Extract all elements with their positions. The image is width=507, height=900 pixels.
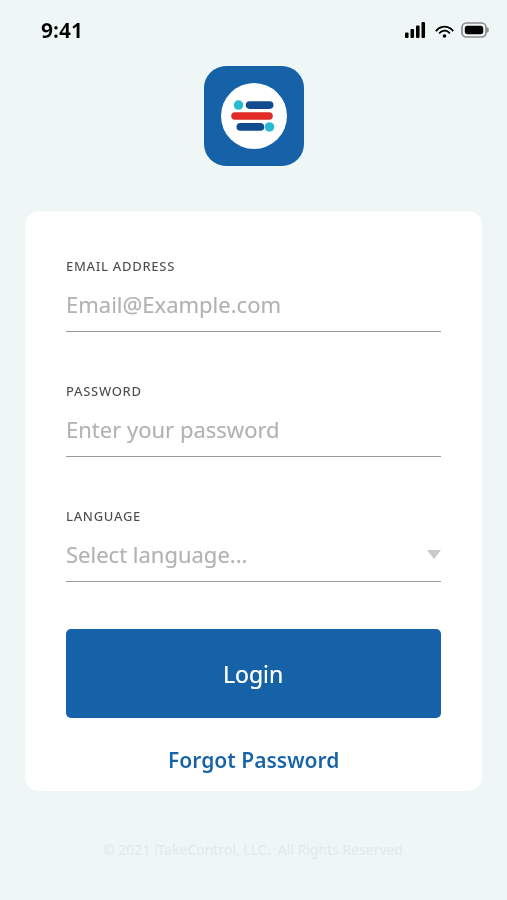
button[interactable]: Forgot Password [25, 736, 482, 784]
staticText: Email@Example.com [66, 289, 282, 319]
other: iTakeControl logo [204, 66, 304, 166]
staticText: Select language... [66, 539, 248, 569]
staticText: EMAIL ADDRESS [66, 257, 175, 275]
staticText: Login [223, 658, 284, 689]
button[interactable]: EMAIL ADDRESS [66, 257, 441, 332]
staticText: 9:41 [41, 16, 83, 45]
staticText: Enter your password [66, 414, 280, 444]
button[interactable]: Login [66, 629, 441, 718]
staticText: PASSWORD [66, 382, 142, 400]
staticText: Forgot Password [168, 746, 340, 775]
staticText: © 2021 iTakeControl, LLC. All Rights Res… [103, 840, 404, 859]
button[interactable]: LANGUAGE [66, 507, 441, 582]
staticText: LANGUAGE [66, 507, 142, 525]
button[interactable]: PASSWORD [66, 382, 441, 457]
